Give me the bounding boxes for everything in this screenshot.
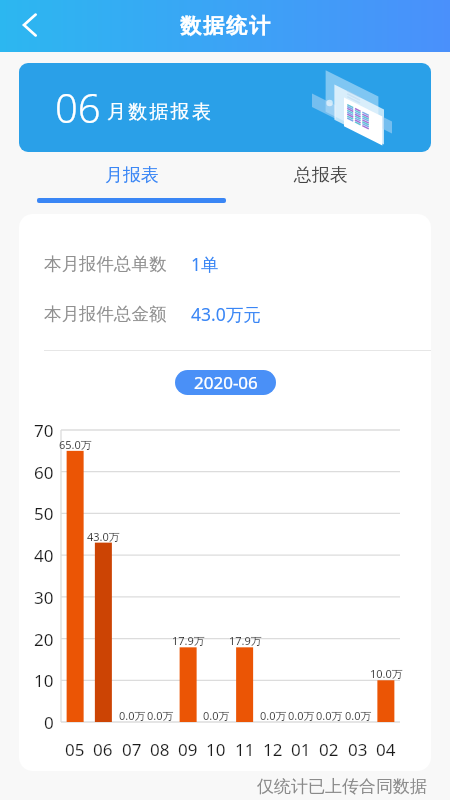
staticText: 0.0万 xyxy=(147,708,174,723)
staticText: 2020-06 xyxy=(194,371,258,394)
staticText: 43.0万 xyxy=(87,529,120,544)
staticText: 05 xyxy=(65,738,85,761)
staticText: 0.0万 xyxy=(260,708,287,723)
staticText: 70 xyxy=(34,419,54,442)
staticText: 40 xyxy=(34,544,54,567)
staticText: 17.9万 xyxy=(229,633,262,648)
staticText: 43.0万元 xyxy=(191,302,261,326)
staticText: 20 xyxy=(34,628,54,651)
staticText: 06 xyxy=(55,80,101,134)
staticText: 12 xyxy=(263,738,283,761)
button[interactable]: 总报表 xyxy=(226,164,415,208)
staticText: 65.0万 xyxy=(59,437,92,452)
staticText: 10.0万 xyxy=(370,666,403,681)
staticText: 数据统计 xyxy=(179,13,271,39)
staticText: 0.0万 xyxy=(288,708,315,723)
staticText: 本月报件总单数 xyxy=(44,253,167,275)
staticText: 10 xyxy=(34,669,54,692)
staticText: 07 xyxy=(122,738,142,761)
staticText: 09 xyxy=(178,738,198,761)
staticText: 04 xyxy=(376,738,396,761)
staticText: 0 xyxy=(44,711,54,734)
staticText: 30 xyxy=(34,586,54,609)
staticText: 0.0万 xyxy=(345,708,372,723)
staticText: 06 xyxy=(93,738,113,761)
staticText: 17.9万 xyxy=(172,633,205,648)
button[interactable]: 月报表 xyxy=(37,164,226,208)
staticText: 50 xyxy=(34,502,54,525)
staticText: 仅统计已上传合同数据 xyxy=(257,776,427,797)
staticText: 03 xyxy=(348,738,368,761)
staticText: 本月报件总金额 xyxy=(44,303,167,325)
button[interactable]: Back xyxy=(0,0,52,52)
staticText: 0.0万 xyxy=(203,708,230,723)
staticText: 0.0万 xyxy=(316,708,343,723)
staticText: 02 xyxy=(319,738,339,761)
staticText: 10 xyxy=(206,738,226,761)
staticText: 总报表 xyxy=(294,164,348,187)
staticText: 月数据报表 xyxy=(106,100,212,124)
staticText: 1单 xyxy=(191,252,219,276)
staticText: 01 xyxy=(291,738,311,761)
button[interactable]: 2020-06 xyxy=(175,370,276,395)
staticText: 月报表 xyxy=(105,164,159,187)
staticText: 0.0万 xyxy=(119,708,146,723)
staticText: 08 xyxy=(150,738,170,761)
staticText: 60 xyxy=(34,461,54,484)
staticText: 11 xyxy=(235,738,255,761)
